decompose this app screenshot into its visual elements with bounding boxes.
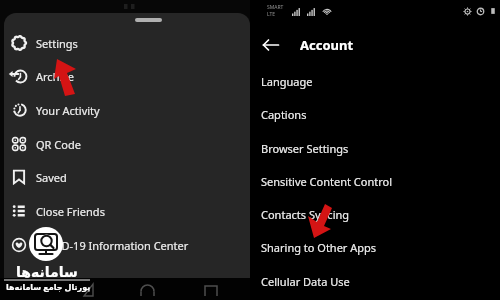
staticText: Your Activity <box>36 103 100 118</box>
staticText: Sharing to Other Apps <box>261 240 377 255</box>
staticText: QR Code <box>36 137 81 152</box>
staticText: Settings <box>36 36 78 51</box>
button[interactable]: Archive <box>4 59 250 93</box>
button[interactable]: QR Code <box>4 127 250 161</box>
staticText: COVID-19 Information Center <box>36 238 189 253</box>
button[interactable]: Saved <box>4 160 250 194</box>
button[interactable]: Sharing to Other Apps <box>250 231 500 263</box>
staticText: Saved <box>36 170 67 185</box>
button[interactable]: Back <box>260 34 282 56</box>
button[interactable]: Your Activity <box>4 93 250 127</box>
staticText: SMART <box>267 4 284 11</box>
staticText: Contacts Syncing <box>261 207 350 222</box>
button[interactable]: Captions <box>250 98 500 130</box>
button[interactable]: Settings <box>4 26 250 60</box>
staticText: سامانه‌ها <box>16 264 78 280</box>
staticText: Archive <box>36 69 75 84</box>
button[interactable]: COVID-19 Information Center <box>4 228 250 262</box>
button[interactable]: Browser Settings <box>250 132 500 164</box>
staticText: Browser Settings <box>261 141 349 156</box>
staticText: Language <box>261 74 313 89</box>
staticText: Cellular Data Use <box>261 274 350 289</box>
staticText: Account <box>300 36 354 54</box>
button[interactable]: Sensitive Content Control <box>250 165 500 197</box>
button[interactable]: Contacts Syncing <box>250 198 500 230</box>
staticText: پورتال جامع سامانه‌ها <box>6 281 91 292</box>
button[interactable]: Language <box>250 65 500 97</box>
button[interactable]: Cellular Data Use <box>250 265 500 297</box>
staticText: Close Friends <box>36 204 105 219</box>
staticText: Sensitive Content Control <box>261 174 393 189</box>
staticText: LTE <box>267 11 276 18</box>
staticText: Captions <box>261 107 307 122</box>
button[interactable]: Close Friends <box>4 194 250 228</box>
